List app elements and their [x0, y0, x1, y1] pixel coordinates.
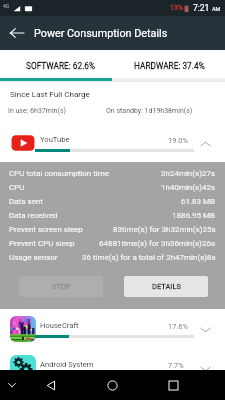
staticText: 61.83 MB — [181, 197, 216, 206]
staticText: HouseCraft — [40, 321, 79, 330]
button[interactable]: Hide keyboard — [0, 370, 24, 400]
staticText: CPU total consumption time — [9, 169, 109, 178]
staticText: 19.0% — [168, 136, 188, 145]
button[interactable]: HouseCraft — [0, 309, 225, 348]
button[interactable]: DETAILS — [124, 276, 208, 297]
staticText: Prevent CPU sleep — [9, 239, 75, 248]
staticText: 7.7% — [168, 361, 184, 370]
staticText: 4G — [3, 3, 10, 9]
staticText: 7:21 — [193, 3, 210, 13]
button[interactable]: SOFTWARE: 62.6% — [0, 50, 112, 78]
staticText: DETAILS — [152, 282, 181, 291]
button[interactable]: Recent apps — [160, 370, 186, 400]
staticText: Usage sensor — [9, 253, 58, 262]
staticText: 3h24min(s)27s — [161, 169, 216, 178]
staticText: In use: 6h37min(s) — [8, 107, 66, 115]
staticText: Prevent screen sleep — [9, 225, 83, 234]
button[interactable]: YouTube — [0, 123, 225, 162]
staticText: 1h40min(s)42s — [161, 183, 216, 192]
button[interactable]: Back — [38, 370, 63, 400]
staticText: Since Last Full Charge — [10, 89, 90, 98]
staticText: 13% — [170, 4, 183, 12]
staticText: Android System — [40, 360, 94, 369]
button[interactable]: Navigate up — [0, 16, 34, 50]
staticText: STOP — [52, 282, 71, 291]
staticText: On standby: 1d19h38min(s) — [106, 107, 193, 115]
staticText: 64881time(s) for 3h36min(s)26s — [99, 239, 216, 248]
staticText: 36 time(s) for a total of 2h47min(s)8s — [82, 253, 216, 262]
staticText: CPU — [9, 183, 25, 192]
staticText: YouTube — [40, 135, 70, 144]
button[interactable]: Home — [99, 370, 125, 400]
staticText: AM — [212, 6, 221, 12]
button[interactable]: STOP — [19, 276, 103, 297]
staticText: Power Consumption Details — [34, 27, 168, 40]
staticText: 1886.95 MB — [172, 211, 216, 220]
staticText: HARDWARE: 37.4% — [134, 61, 205, 71]
staticText: Data received — [9, 211, 58, 220]
staticText: Data sent — [9, 197, 43, 206]
button[interactable]: HARDWARE: 37.4% — [112, 50, 225, 78]
button[interactable]: Android System — [0, 348, 225, 387]
staticText: SOFTWARE: 62.6% — [26, 61, 96, 71]
staticText: 83time(s) for 3h32min(s)25s — [113, 225, 216, 234]
staticText: 17.6% — [168, 322, 188, 331]
